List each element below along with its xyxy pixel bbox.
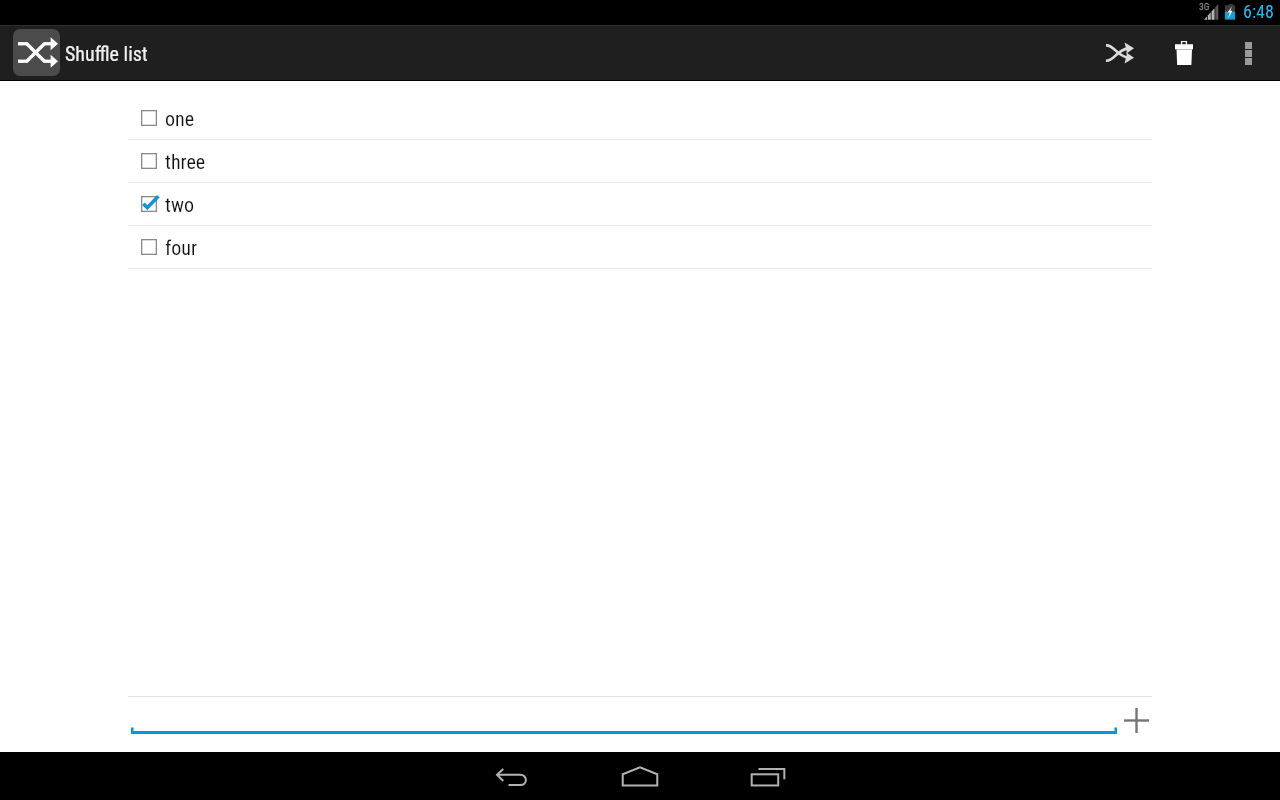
staticText: 3G	[1199, 1, 1210, 12]
button[interactable]: Recent apps	[704, 752, 832, 800]
staticText: four	[165, 236, 198, 259]
button[interactable]: More options	[1216, 25, 1280, 81]
button[interactable]: Home	[576, 752, 704, 800]
button[interactable]: three	[128, 140, 1152, 183]
button[interactable]: Add item	[1120, 704, 1152, 736]
button[interactable]: Shuffle	[1088, 25, 1152, 81]
staticText: 6:48	[1243, 1, 1274, 22]
button[interactable]: four	[128, 226, 1152, 269]
staticText: Shuffle list	[65, 42, 148, 65]
staticText: three	[165, 150, 206, 173]
button[interactable]: Back	[448, 752, 576, 800]
button[interactable]: Shuffle list	[0, 25, 148, 81]
staticText: two	[165, 193, 194, 216]
button[interactable]: Delete	[1152, 25, 1216, 81]
button[interactable]: two	[128, 183, 1152, 226]
button[interactable]: one	[128, 97, 1152, 140]
button[interactable]	[131, 700, 1117, 734]
staticText: one	[165, 107, 195, 130]
